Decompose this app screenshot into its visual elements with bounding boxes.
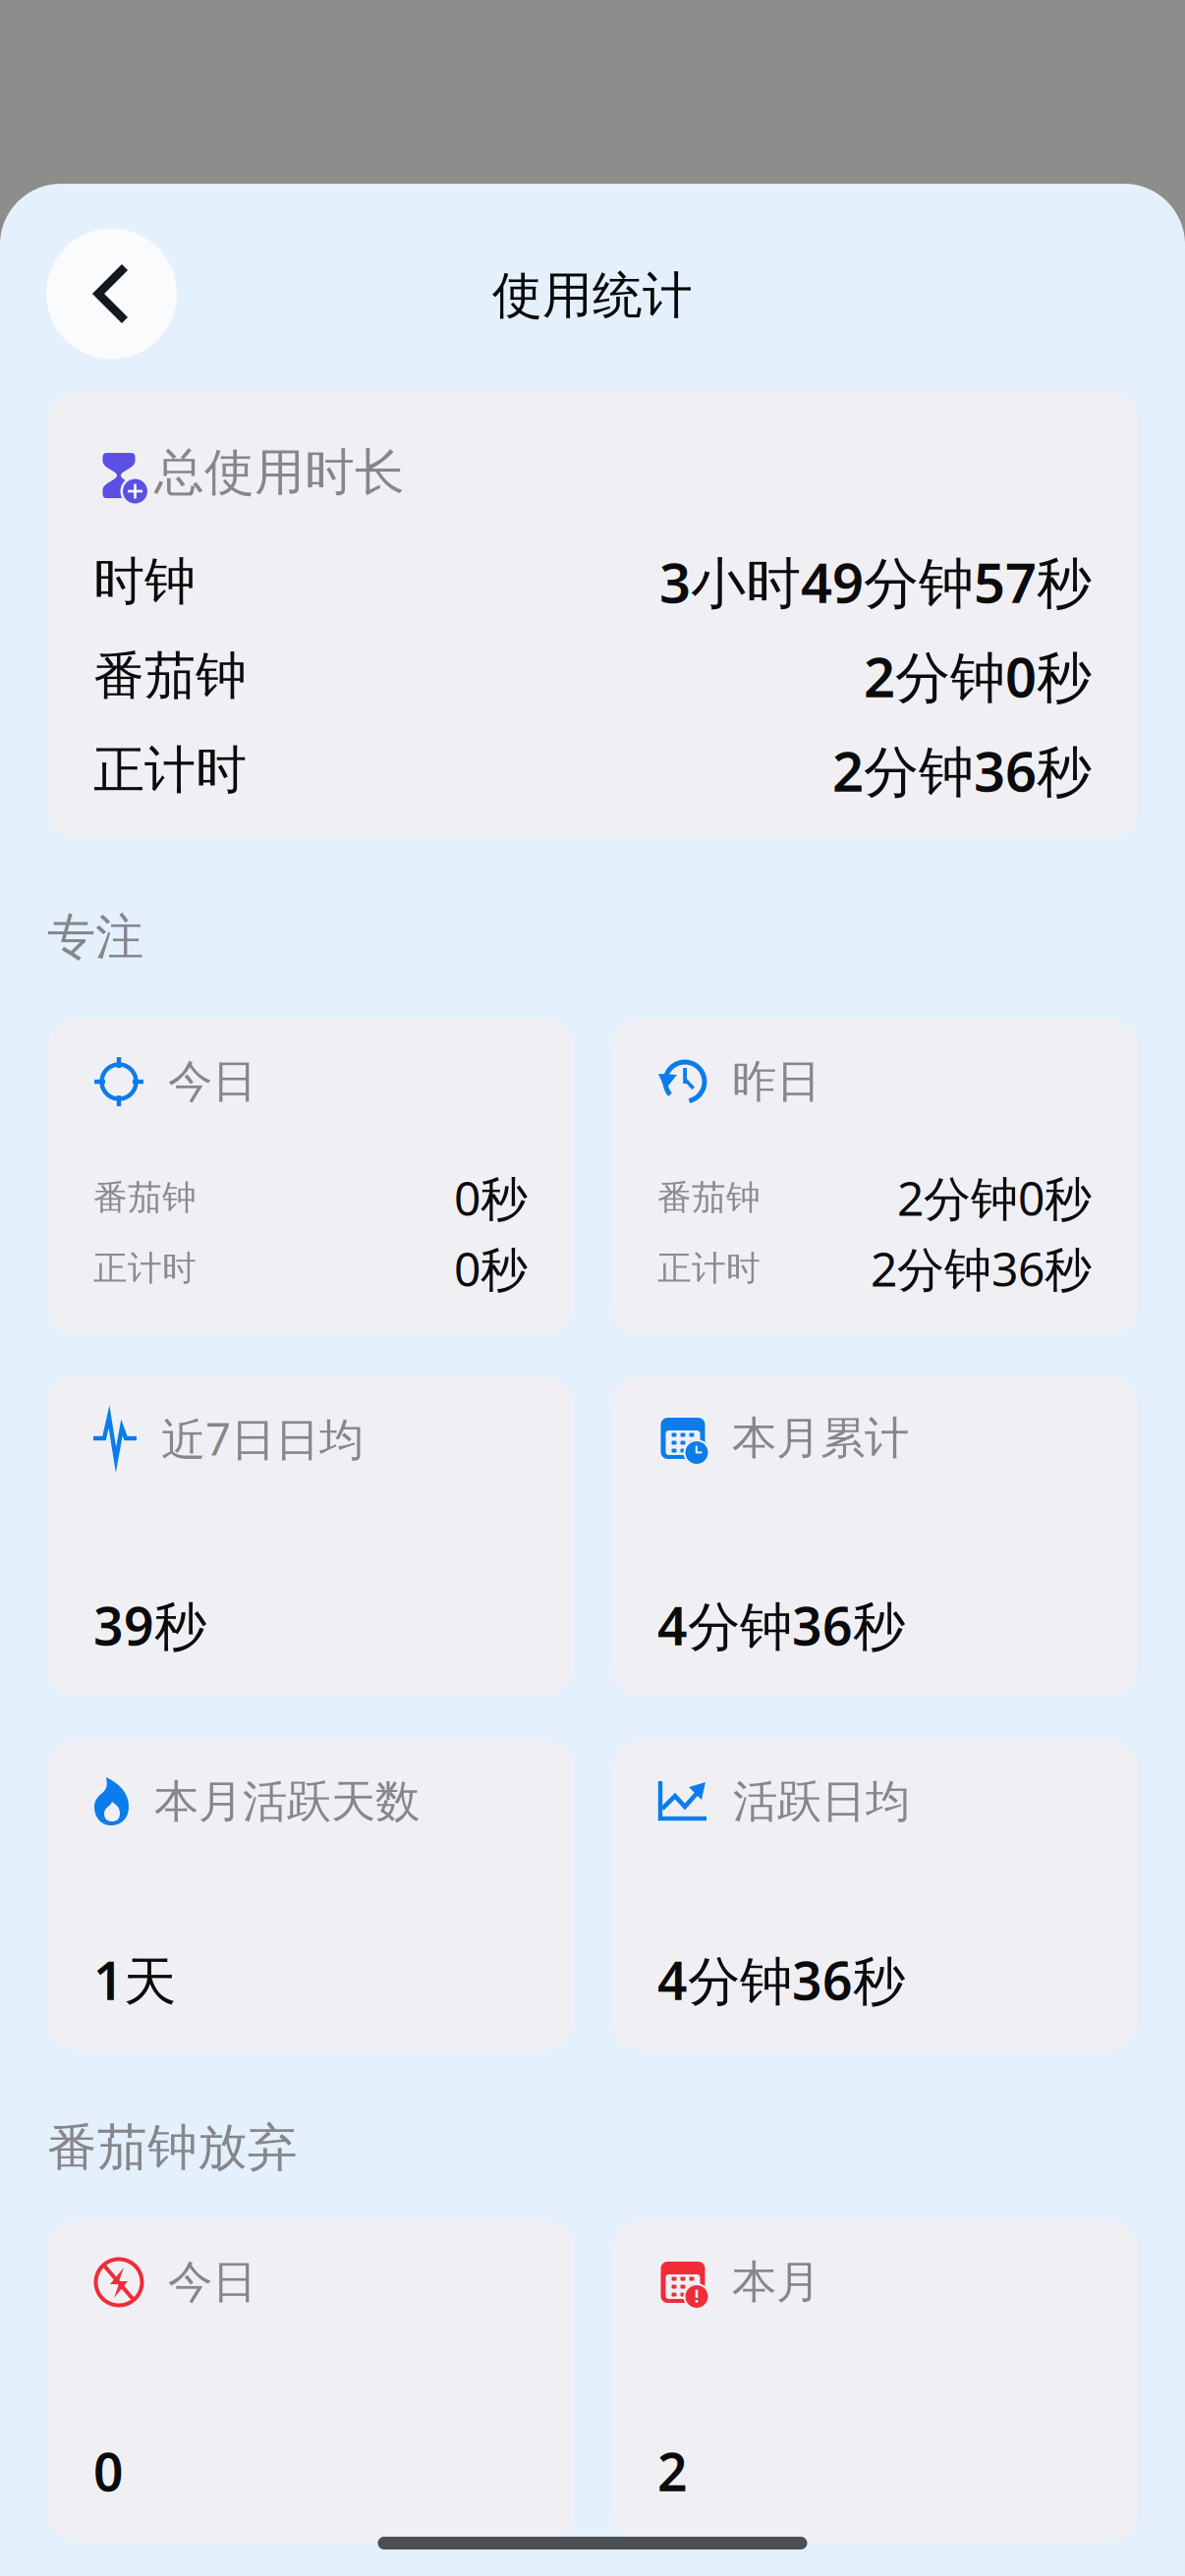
staticText: 2分钟36秒 [871, 1237, 1092, 1300]
staticText: 番茄钟 [657, 1177, 761, 1219]
staticText: 2分钟0秒 [864, 639, 1092, 712]
staticText: 1天 [93, 1945, 176, 2014]
staticText: 近7日日均 [161, 1409, 364, 1468]
staticText: 今日 [168, 2255, 256, 2310]
button[interactable]: 返回 [46, 228, 177, 359]
staticText: 总使用时长 [154, 442, 405, 503]
staticText: 3小时49分钟57秒 [659, 545, 1092, 618]
staticText: 0秒 [454, 1166, 528, 1229]
staticText: 番茄钟 [93, 645, 247, 707]
staticText: 昨日 [732, 1054, 820, 1109]
staticText: 活跃日均 [733, 1775, 910, 1829]
staticText: 今日 [168, 1054, 256, 1109]
staticText: 番茄钟 [93, 1177, 197, 1219]
staticText: 本月累计 [732, 1411, 909, 1466]
staticText: 专注 [47, 907, 143, 967]
staticText: 使用统计 [492, 265, 693, 326]
staticText: 本月活跃天数 [154, 1775, 420, 1829]
staticText: 正计时 [93, 1247, 197, 1289]
staticText: 时钟 [93, 550, 196, 613]
staticText: 正计时 [657, 1247, 761, 1289]
staticText: 4分钟36秒 [657, 1590, 905, 1660]
staticText: 4分钟36秒 [657, 1945, 905, 2014]
staticText: 2分钟36秒 [832, 734, 1092, 807]
staticText: 正计时 [93, 739, 247, 802]
staticText: 2 [657, 2436, 688, 2506]
staticText: 2分钟0秒 [897, 1166, 1092, 1229]
staticText: 0 [93, 2436, 124, 2506]
staticText: 番茄钟放弃 [47, 2117, 298, 2178]
staticText: 0秒 [454, 1237, 528, 1300]
staticText: 39秒 [93, 1590, 206, 1660]
staticText: 本月 [732, 2255, 820, 2310]
